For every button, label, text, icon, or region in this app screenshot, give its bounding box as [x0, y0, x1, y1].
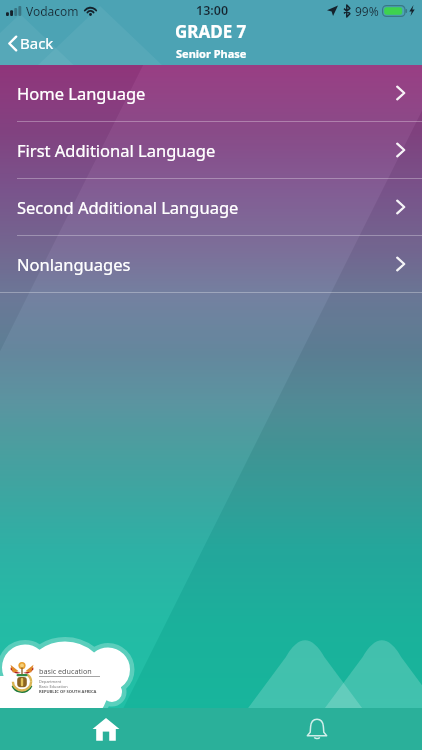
staticText: Second Additional Language: [17, 196, 239, 218]
button[interactable]: Second Additional Language: [0, 179, 422, 235]
staticText: Back: [20, 33, 54, 53]
button[interactable]: Nonlanguages: [0, 236, 422, 292]
staticText: 13:00: [196, 2, 229, 19]
staticText: First Additional Language: [17, 139, 216, 161]
button[interactable]: First Additional Language: [0, 122, 422, 178]
staticText: basic education: [39, 666, 92, 676]
button[interactable]: Home Language: [0, 65, 422, 121]
staticText: GRADE 7: [175, 20, 247, 43]
staticText: Home Language: [17, 82, 146, 104]
button[interactable]: Notifications: [211, 708, 422, 750]
staticText: Department: [39, 679, 62, 684]
staticText: REPUBLIC OF SOUTH AFRICA: [39, 689, 97, 695]
staticText: 99%: [355, 3, 379, 19]
staticText: Vodacom: [26, 3, 79, 19]
staticText: Basic Education: [39, 684, 68, 689]
button[interactable]: Home: [0, 708, 211, 750]
staticText: Nonlanguages: [17, 253, 131, 275]
staticText: Senior Phase: [176, 46, 247, 61]
button[interactable]: Back: [4, 28, 58, 58]
